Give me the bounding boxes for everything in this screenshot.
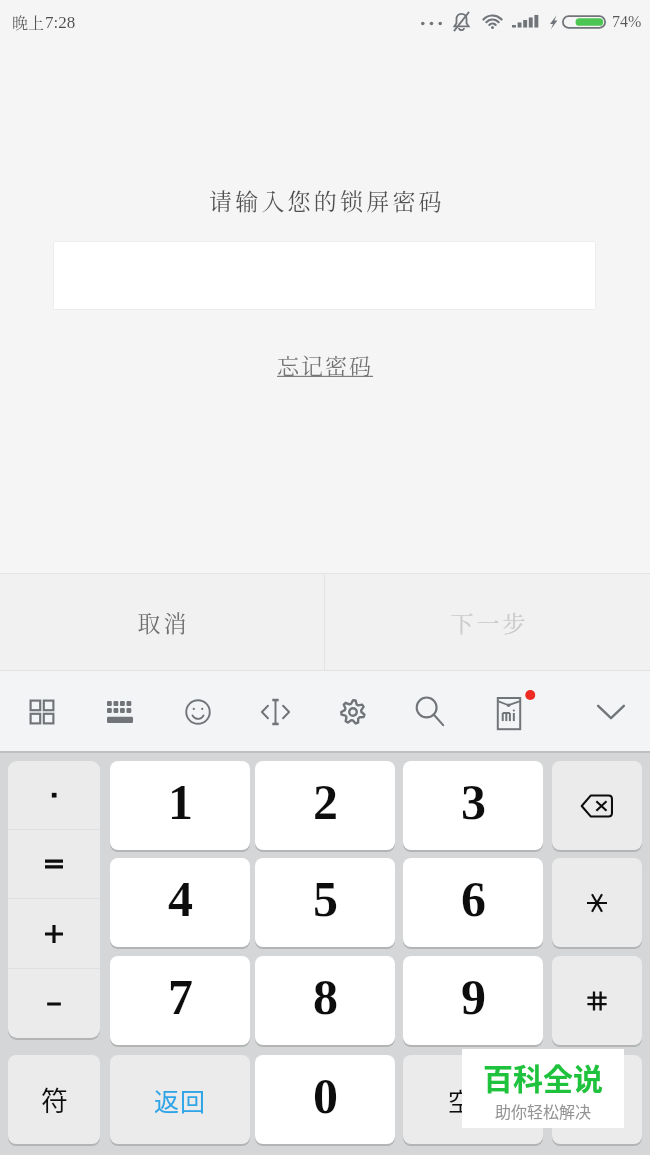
button[interactable]: Delete	[552, 761, 642, 850]
button[interactable]: Emoji	[162, 671, 234, 752]
staticText: 返回	[154, 1082, 207, 1118]
button[interactable]: Keyboard layouts	[6, 671, 78, 752]
button[interactable]: Keyboard	[84, 671, 156, 752]
staticText: 请输入您的锁屏密码	[209, 184, 445, 217]
staticText: 忘记密码	[277, 349, 374, 381]
button[interactable]: 5	[255, 858, 395, 947]
staticText: 7	[168, 969, 193, 1024]
staticText: 晚上	[12, 11, 45, 34]
staticText: 符	[41, 1080, 68, 1119]
staticText: 取消	[136, 606, 188, 639]
button[interactable]: 6	[403, 858, 543, 947]
button[interactable]: Search	[394, 671, 466, 752]
button[interactable]: minus	[8, 969, 100, 1038]
staticText: 9	[461, 969, 486, 1024]
staticText: 百科全说	[483, 1055, 603, 1098]
button[interactable]: 3	[403, 761, 543, 850]
staticText: 5	[313, 871, 338, 926]
staticText: 1	[168, 774, 193, 829]
button[interactable]: 忘记密码	[277, 349, 374, 381]
button[interactable]: 1	[110, 761, 250, 850]
button[interactable]: Hash	[552, 956, 642, 1045]
button[interactable]: 0	[255, 1055, 395, 1144]
button[interactable]: 4	[110, 858, 250, 947]
button[interactable]: 空格	[403, 1055, 543, 1144]
button[interactable]: dot	[8, 761, 100, 829]
staticText: 3	[461, 774, 486, 829]
button[interactable]: 2	[255, 761, 395, 850]
button[interactable]: Asterisk	[552, 858, 642, 947]
button[interactable]: eq	[8, 830, 100, 898]
button[interactable]: 符	[8, 1055, 100, 1144]
button[interactable]: Move cursor	[239, 671, 311, 752]
button[interactable]: 取消	[0, 574, 324, 670]
staticText: 74%	[612, 13, 642, 31]
button[interactable]: plus	[8, 899, 100, 968]
staticText: 4	[168, 871, 193, 926]
button[interactable]: Hide keyboard	[575, 671, 647, 752]
button[interactable]: 7	[110, 956, 250, 1045]
staticText: 6	[461, 871, 486, 926]
staticText: 下一步	[449, 606, 527, 639]
button[interactable]: 确定	[552, 1055, 642, 1144]
staticText: 空格	[448, 1082, 499, 1118]
button[interactable]: Settings	[317, 671, 389, 752]
staticText: 0	[313, 1068, 338, 1123]
button[interactable]: Mi features	[477, 671, 549, 752]
button[interactable]: 8	[255, 956, 395, 1045]
staticText: 7:28	[45, 13, 76, 32]
staticText: 助你轻松解决	[495, 1099, 592, 1122]
staticText: 确定	[574, 1083, 620, 1116]
button[interactable]: 9	[403, 956, 543, 1045]
staticText: 2	[313, 774, 338, 829]
staticText: 8	[313, 969, 338, 1024]
button[interactable]: 返回	[110, 1055, 250, 1144]
